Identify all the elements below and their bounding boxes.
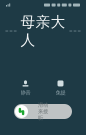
button[interactable]: 滑动来接听 — [14, 104, 72, 119]
staticText: 静音 — [20, 89, 30, 96]
button[interactable]: 免提 — [43, 77, 78, 98]
staticText: 母亲大人 — [20, 13, 65, 49]
staticText: 免提 — [55, 89, 65, 96]
button[interactable]: 静音 — [8, 77, 43, 98]
staticText: 滑动来接听 — [38, 102, 48, 121]
